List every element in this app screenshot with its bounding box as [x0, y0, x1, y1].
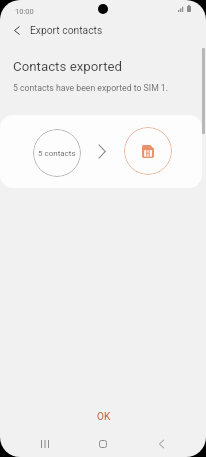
staticText: Contacts exported	[13, 59, 123, 75]
staticText: 5 contacts	[38, 149, 76, 158]
button[interactable]: Home	[85, 431, 121, 457]
staticText: 10:00	[15, 7, 34, 16]
staticText: Export contacts	[30, 24, 103, 36]
button[interactable]: Navigate up	[7, 20, 27, 40]
staticText: 5 contacts have been exported to SIM 1.	[13, 83, 169, 93]
staticText: OK	[97, 411, 111, 423]
button[interactable]: Recent apps	[27, 431, 63, 457]
button[interactable]: Back	[143, 431, 179, 457]
button[interactable]: OK	[73, 405, 135, 429]
